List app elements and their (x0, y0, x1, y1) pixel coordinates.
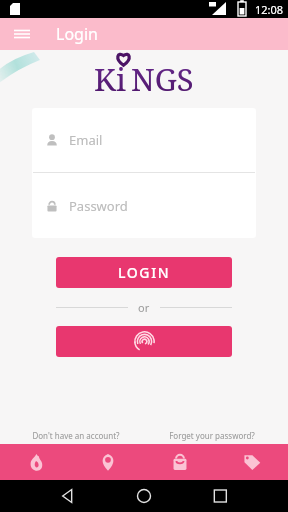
button[interactable]: Password (32, 173, 256, 238)
staticText: i (116, 58, 126, 94)
button[interactable]: Email (32, 108, 256, 172)
staticText: LOGIN (118, 263, 171, 282)
staticText: NGS (131, 58, 194, 94)
staticText: Login (56, 23, 98, 45)
button[interactable]: Sign Up Now (14, 444, 138, 478)
staticText: Don't have an account? (32, 430, 120, 441)
button[interactable]: Trending (0, 444, 72, 480)
staticText: Forget your password? (169, 430, 255, 441)
staticText: or (138, 300, 150, 315)
staticText: Password (69, 197, 128, 215)
staticText: 12:08 (255, 2, 284, 17)
button[interactable]: LOGIN (56, 257, 232, 288)
button[interactable]: Offers (216, 444, 288, 480)
button[interactable]: Login with fingerprint (56, 326, 232, 357)
button[interactable]: Retrieve (150, 444, 274, 478)
staticText: Sign Up Now (37, 450, 116, 468)
button[interactable]: Places (72, 444, 144, 480)
staticText: K (94, 58, 116, 94)
button[interactable]: Shop (144, 444, 216, 480)
button[interactable]: Open navigation menu (8, 20, 36, 48)
staticText: Email (69, 131, 103, 149)
